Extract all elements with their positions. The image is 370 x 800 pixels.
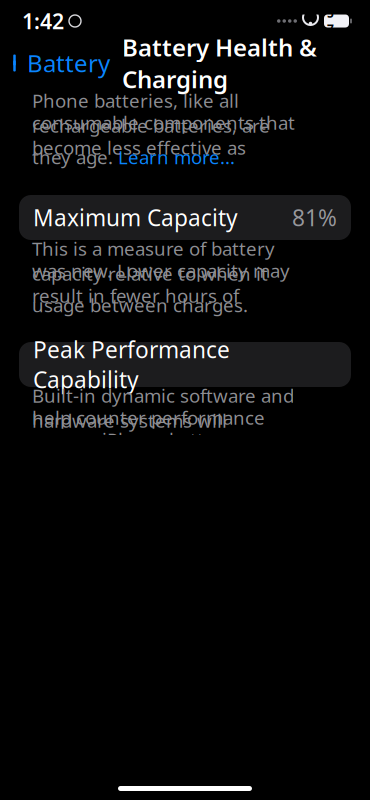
staticText: consumable components that become less e…: [32, 110, 295, 160]
staticText: This is a measure of battery capacity re…: [32, 236, 275, 286]
button[interactable]: Learn more...: [118, 145, 235, 169]
button[interactable]: Battery: [0, 41, 110, 85]
staticText: Learn more...: [118, 145, 235, 169]
staticText: Battery: [27, 47, 110, 79]
staticText: they age.: [32, 145, 118, 169]
staticText: help counter performance impacts that ma…: [32, 405, 281, 455]
staticText: Maximum Capacity: [33, 202, 238, 232]
staticText: as your iPhone battery chemically ages.: [32, 427, 233, 477]
staticText: Built-in dynamic software and hardware s…: [32, 383, 294, 433]
staticText: 1:42: [22, 7, 64, 35]
staticText: was new. Lower capacity may result in fe…: [32, 258, 290, 308]
staticText: 81%: [292, 202, 337, 232]
staticText: Peak Performance Capability: [33, 334, 230, 395]
staticText: Phone batteries, like all rechargeable b…: [32, 88, 270, 138]
staticText: usage between charges.: [32, 293, 248, 317]
button[interactable]: Maximum Capacity: [19, 195, 351, 240]
button[interactable]: Peak Performance Capability: [19, 342, 351, 387]
staticText: 57: [327, 5, 334, 37]
staticText: Battery Health & Charging: [122, 31, 317, 95]
